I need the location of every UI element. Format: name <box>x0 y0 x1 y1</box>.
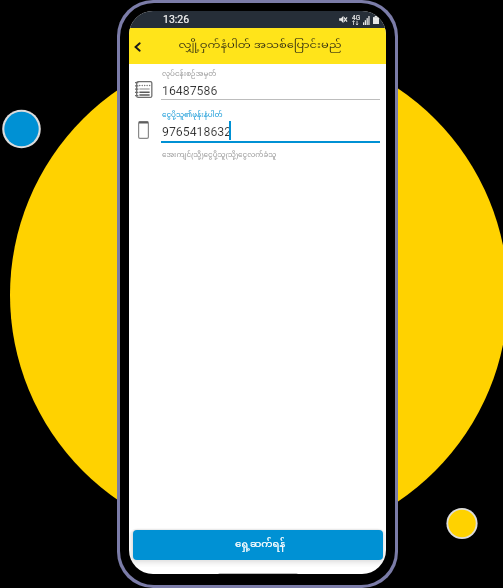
staticText: ရှေ့ဆက်ရန် <box>235 538 286 552</box>
button[interactable]: Back <box>129 30 157 63</box>
staticText: လျှို့ဝှက်နံပါတ် အသစ်ပြောင်းမည် <box>178 38 342 54</box>
button[interactable]: ရှေ့ဆက်ရန် <box>133 530 383 560</box>
staticText: ငွေပို့သူ၏ဖုန်းနံပါတ် <box>162 110 223 120</box>
staticText: 13:26 <box>163 13 190 25</box>
staticText: 16487586 <box>162 84 218 98</box>
staticText: 4G <box>352 14 361 22</box>
staticText: လုပ်ငန်းစဉ်အမှတ် <box>162 69 217 79</box>
staticText: အေးကျင်(သို့)ငွေပို့သူ(သို့)ငွေလက်ခံသူ <box>162 150 277 160</box>
staticText: 9765418632 <box>162 125 232 139</box>
